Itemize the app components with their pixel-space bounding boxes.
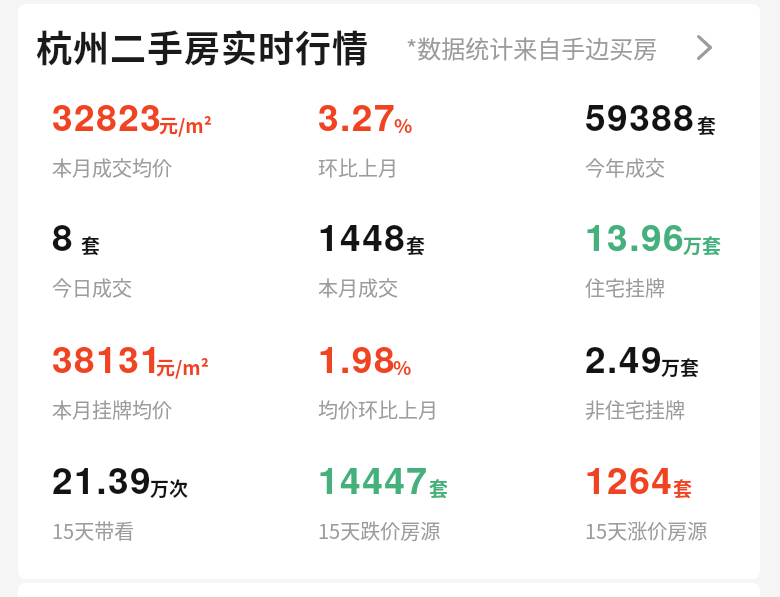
staticText: 1264 [585, 452, 674, 505]
other: More market details [697, 35, 712, 60]
staticText: 元/m² [159, 111, 212, 139]
staticText: 套 [673, 474, 693, 502]
staticText: 15天跌价房源 [318, 516, 441, 545]
staticText: 均价环比上月 [318, 395, 438, 424]
staticText: 8 [52, 209, 75, 262]
staticText: 15天带看 [52, 516, 135, 545]
staticText: 本月成交均价 [52, 153, 172, 182]
staticText: 环比上月 [318, 153, 398, 182]
staticText: 元/m² [156, 353, 209, 381]
staticText: 本月成交 [318, 273, 398, 302]
staticText: 万套 [661, 353, 700, 381]
staticText: 32823 [52, 89, 163, 142]
staticText: 3.27 [318, 89, 397, 142]
staticText: 1.98 [318, 331, 397, 384]
staticText: 21.39 [52, 452, 153, 505]
staticText: 套 [697, 111, 717, 139]
staticText: 今年成交 [585, 153, 665, 182]
staticText: % [393, 353, 412, 381]
button[interactable]: *数据统计来自手边买房 [398, 22, 726, 73]
staticText: 今日成交 [52, 273, 132, 302]
staticText: 14447 [318, 452, 429, 505]
staticText: 38131 [52, 331, 163, 384]
staticText: 2.49 [585, 331, 664, 384]
staticText: 万次 [150, 474, 189, 502]
staticText: 套 [406, 231, 426, 259]
staticText: *数据统计来自手边买房 [406, 30, 658, 65]
staticText: 13.96 [585, 209, 686, 262]
staticText: % [394, 111, 413, 139]
staticText: 15天涨价房源 [585, 516, 708, 545]
staticText: 万套 [683, 231, 722, 259]
staticText: 59388 [585, 89, 696, 142]
staticText: 杭州二手房实时行情 [36, 20, 370, 72]
staticText: 本月挂牌均价 [52, 395, 172, 424]
staticText: 住宅挂牌 [585, 273, 665, 302]
staticText: 套 [81, 231, 101, 259]
staticText: 1448 [318, 209, 407, 262]
staticText: 套 [429, 474, 449, 502]
staticText: 非住宅挂牌 [585, 395, 685, 424]
